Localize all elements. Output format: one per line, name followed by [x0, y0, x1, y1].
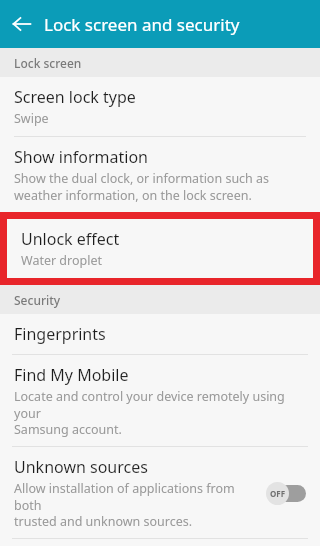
staticText: Security: [14, 292, 61, 308]
button[interactable]: Unlock effect: [7, 219, 313, 278]
staticText: Water droplet: [21, 252, 103, 269]
button[interactable]: Navigate up: [2, 4, 42, 44]
staticText: Show information: [14, 146, 148, 168]
button[interactable]: Show information: [0, 137, 320, 212]
button[interactable]: Screen lock type: [0, 77, 320, 136]
staticText: Allow installation of applications from …: [14, 480, 258, 529]
staticText: Show the dual clock, or information such…: [14, 170, 270, 203]
staticText: Lock screen and security: [44, 13, 240, 36]
button[interactable]: Fingerprints: [0, 314, 320, 354]
button[interactable]: Unknown sources: [0, 447, 320, 538]
button[interactable]: Unknown sources toggle, off: [266, 481, 308, 505]
staticText: Screen lock type: [14, 86, 136, 108]
button[interactable]: Find My Mobile: [0, 355, 320, 446]
staticText: Locate and control your device remotely …: [14, 388, 308, 437]
staticText: Unlock effect: [21, 228, 120, 250]
staticText: Lock screen: [14, 55, 82, 71]
staticText: Find My Mobile: [14, 364, 129, 386]
staticText: Fingerprints: [14, 323, 106, 345]
staticText: OFF: [270, 488, 286, 499]
staticText: Swipe: [14, 110, 49, 127]
staticText: Unknown sources: [14, 456, 148, 478]
